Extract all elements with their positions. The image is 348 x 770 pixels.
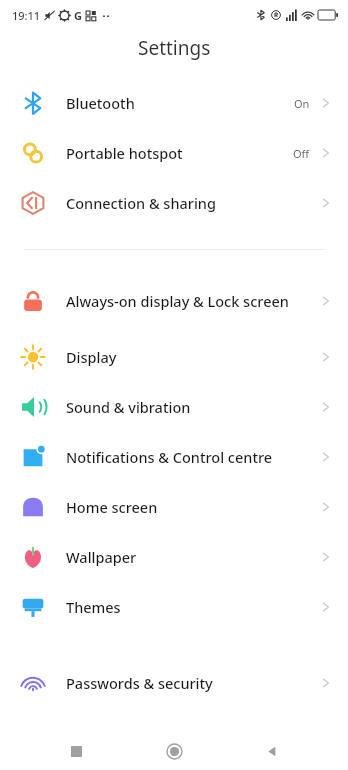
- button[interactable]: Home screen: [0, 482, 348, 532]
- button[interactable]: Bluetooth: [0, 78, 348, 128]
- staticText: 19:11: [12, 8, 41, 23]
- button[interactable]: Sound & vibration: [0, 382, 348, 432]
- staticText: G: [74, 8, 82, 23]
- button[interactable]: Always-on display & Lock screen: [0, 270, 348, 332]
- staticText: Themes: [66, 597, 121, 617]
- staticText: Connection & sharing: [66, 193, 216, 213]
- button[interactable]: Themes: [0, 582, 348, 632]
- staticText: Settings: [138, 35, 211, 61]
- button[interactable]: Notifications & Control centre: [0, 432, 348, 482]
- staticText: Always-on display & Lock screen: [66, 291, 289, 311]
- staticText: Display: [66, 347, 117, 367]
- button[interactable]: Connection & sharing: [0, 178, 348, 228]
- staticText: Home screen: [66, 497, 158, 517]
- staticText: Sound & vibration: [66, 397, 191, 417]
- button[interactable]: Display: [0, 332, 348, 382]
- staticText: On: [294, 96, 310, 111]
- button[interactable]: Back: [250, 732, 294, 770]
- staticText: Portable hotspot: [66, 143, 183, 163]
- staticText: Notifications & Control centre: [66, 447, 273, 467]
- button[interactable]: Portable hotspot: [0, 128, 348, 178]
- staticText: Passwords & security: [66, 673, 213, 693]
- button[interactable]: Wallpaper: [0, 532, 348, 582]
- button[interactable]: Home: [152, 732, 196, 770]
- staticText: Off: [293, 146, 310, 161]
- button[interactable]: Recent apps: [54, 732, 98, 770]
- staticText: Wallpaper: [66, 547, 137, 567]
- staticText: Bluetooth: [66, 93, 135, 113]
- button[interactable]: Passwords & security: [0, 658, 348, 708]
